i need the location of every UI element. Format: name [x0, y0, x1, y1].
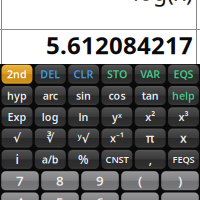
staticText: x⁻¹	[110, 131, 124, 145]
button[interactable]: VAR	[135, 65, 166, 84]
staticText: ×	[136, 193, 144, 200]
button[interactable]: x²	[135, 107, 166, 126]
staticText: CNST	[105, 153, 128, 166]
button[interactable]: 6	[81, 192, 119, 200]
button[interactable]: %	[68, 150, 99, 169]
button[interactable]: 5	[41, 192, 79, 200]
staticText: 2nd	[7, 67, 27, 81]
staticText: STO	[107, 67, 127, 81]
button[interactable]: STO	[101, 65, 132, 84]
button[interactable]: CNST	[101, 150, 132, 169]
button[interactable]: Exp	[2, 107, 32, 126]
staticText: π	[146, 130, 155, 146]
button[interactable]: ×	[121, 192, 159, 200]
staticText: √	[13, 131, 21, 145]
button[interactable]: tan	[135, 86, 166, 105]
staticText: 9	[96, 172, 104, 189]
staticText: hyp	[7, 88, 27, 103]
button[interactable]: EQS	[168, 65, 199, 84]
staticText: i	[15, 151, 18, 167]
button[interactable]: π	[135, 129, 166, 148]
staticText: ln	[79, 110, 89, 124]
staticText: 8	[56, 172, 64, 189]
button[interactable]: ,	[135, 150, 166, 169]
button[interactable]: i	[2, 150, 32, 169]
staticText: help	[172, 88, 195, 103]
staticText: ʸ√	[78, 130, 90, 146]
staticText: 5	[56, 193, 64, 200]
staticText: 6	[96, 193, 104, 200]
button[interactable]: )	[161, 171, 199, 190]
button[interactable]: x³	[168, 107, 199, 126]
button[interactable]: 8	[41, 171, 79, 190]
button[interactable]: √	[2, 129, 32, 148]
button[interactable]: arc	[35, 86, 66, 105]
staticText: FEQS	[172, 153, 194, 166]
button[interactable]: a/b	[35, 150, 66, 169]
button[interactable]: log	[35, 107, 66, 126]
button[interactable]: 4	[1, 192, 39, 200]
staticText: %	[78, 151, 89, 167]
staticText: x³	[178, 110, 188, 124]
staticText: CLR	[74, 67, 94, 81]
button[interactable]: hyp	[2, 86, 32, 105]
staticText: VAR	[140, 67, 160, 81]
button[interactable]: ln	[68, 107, 99, 126]
button[interactable]: 7	[1, 171, 39, 190]
staticText: a/b	[42, 152, 59, 166]
staticText: log(x)	[133, 0, 193, 7]
button[interactable]: ʸ√	[68, 129, 99, 148]
staticText: ÷	[176, 193, 184, 200]
staticText: (	[138, 172, 142, 189]
button[interactable]: ∛	[35, 129, 66, 148]
button[interactable]: FEQS	[168, 150, 199, 169]
staticText: x	[180, 130, 187, 146]
button[interactable]: 2nd	[2, 65, 32, 84]
staticText: x²	[145, 110, 155, 124]
button[interactable]: 9	[81, 171, 119, 190]
staticText: log	[42, 110, 59, 124]
staticText: cos	[108, 88, 125, 103]
staticText: DEL	[40, 67, 60, 81]
staticText: sin	[76, 88, 91, 103]
staticText: EQS	[173, 67, 193, 81]
staticText: )	[178, 172, 182, 189]
button[interactable]: sin	[68, 86, 99, 105]
staticText: tan	[142, 88, 159, 103]
button[interactable]: DEL	[35, 65, 66, 84]
button[interactable]: help	[168, 86, 199, 105]
button[interactable]: yˣ	[101, 107, 132, 126]
staticText: yˣ	[112, 110, 122, 124]
staticText: 7	[16, 172, 24, 189]
button[interactable]: x⁻¹	[101, 129, 132, 148]
button[interactable]: (	[121, 171, 159, 190]
staticText: ∛	[46, 131, 54, 145]
staticText: arc	[43, 88, 58, 103]
staticText: 5.612084217	[46, 29, 193, 61]
staticText: Exp	[7, 110, 26, 124]
button[interactable]: cos	[101, 86, 132, 105]
button[interactable]: x	[168, 129, 199, 148]
staticText: ,	[149, 151, 152, 167]
button[interactable]: CLR	[68, 65, 99, 84]
button[interactable]: ÷	[161, 192, 199, 200]
staticText: 4	[16, 193, 24, 200]
